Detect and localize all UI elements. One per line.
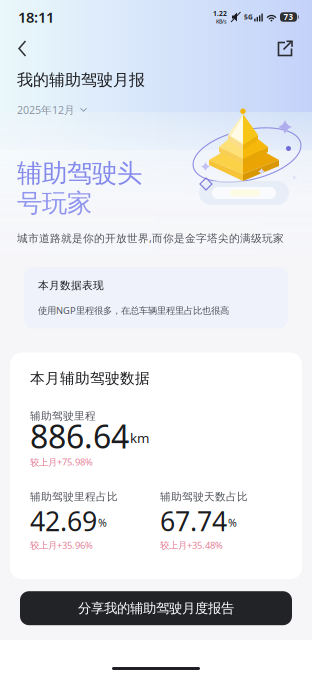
button[interactable]: 分享我的辅助驾驶月度报告: [20, 591, 292, 625]
button[interactable]: Back: [10, 34, 40, 64]
staticText: 本月数据表现: [38, 279, 104, 292]
staticText: 辅助驾驶头: [17, 158, 142, 189]
staticText: 本月辅助驾驶数据: [30, 369, 150, 387]
staticText: 18:11: [18, 7, 54, 27]
staticText: %: [98, 516, 107, 530]
staticText: 辅助驾驶里程: [30, 409, 96, 423]
staticText: 分享我的辅助驾驶月度报告: [78, 600, 234, 616]
staticText: 号玩家: [17, 188, 92, 219]
staticText: 辅助驾驶天数占比: [160, 490, 248, 503]
staticText: 城市道路就是你的开放世界,而你是金字塔尖的满级玩家: [17, 231, 284, 245]
staticText: %: [228, 516, 237, 530]
staticText: 42.69: [30, 503, 97, 539]
staticText: 使用NGP里程很多，在总车辆里程里占比也很高: [38, 304, 229, 316]
staticText: 辅助驾驶里程占比: [30, 490, 118, 503]
staticText: 886.64: [30, 415, 129, 457]
staticText: km: [130, 429, 149, 447]
button[interactable]: 2025年12月: [17, 103, 87, 117]
staticText: 较上月+35.48%: [160, 539, 223, 551]
staticText: 67.74: [160, 503, 227, 539]
staticText: 较上月+75.98%: [30, 456, 93, 468]
staticText: 73: [283, 12, 293, 22]
button[interactable]: Share: [270, 34, 300, 64]
staticText: KB/s: [216, 18, 227, 25]
staticText: 2025年12月: [17, 103, 75, 117]
staticText: 5G: [244, 13, 253, 21]
staticText: 我的辅助驾驶月报: [17, 70, 145, 90]
staticText: 较上月+35.96%: [30, 539, 93, 551]
staticText: 1.22: [213, 9, 227, 18]
